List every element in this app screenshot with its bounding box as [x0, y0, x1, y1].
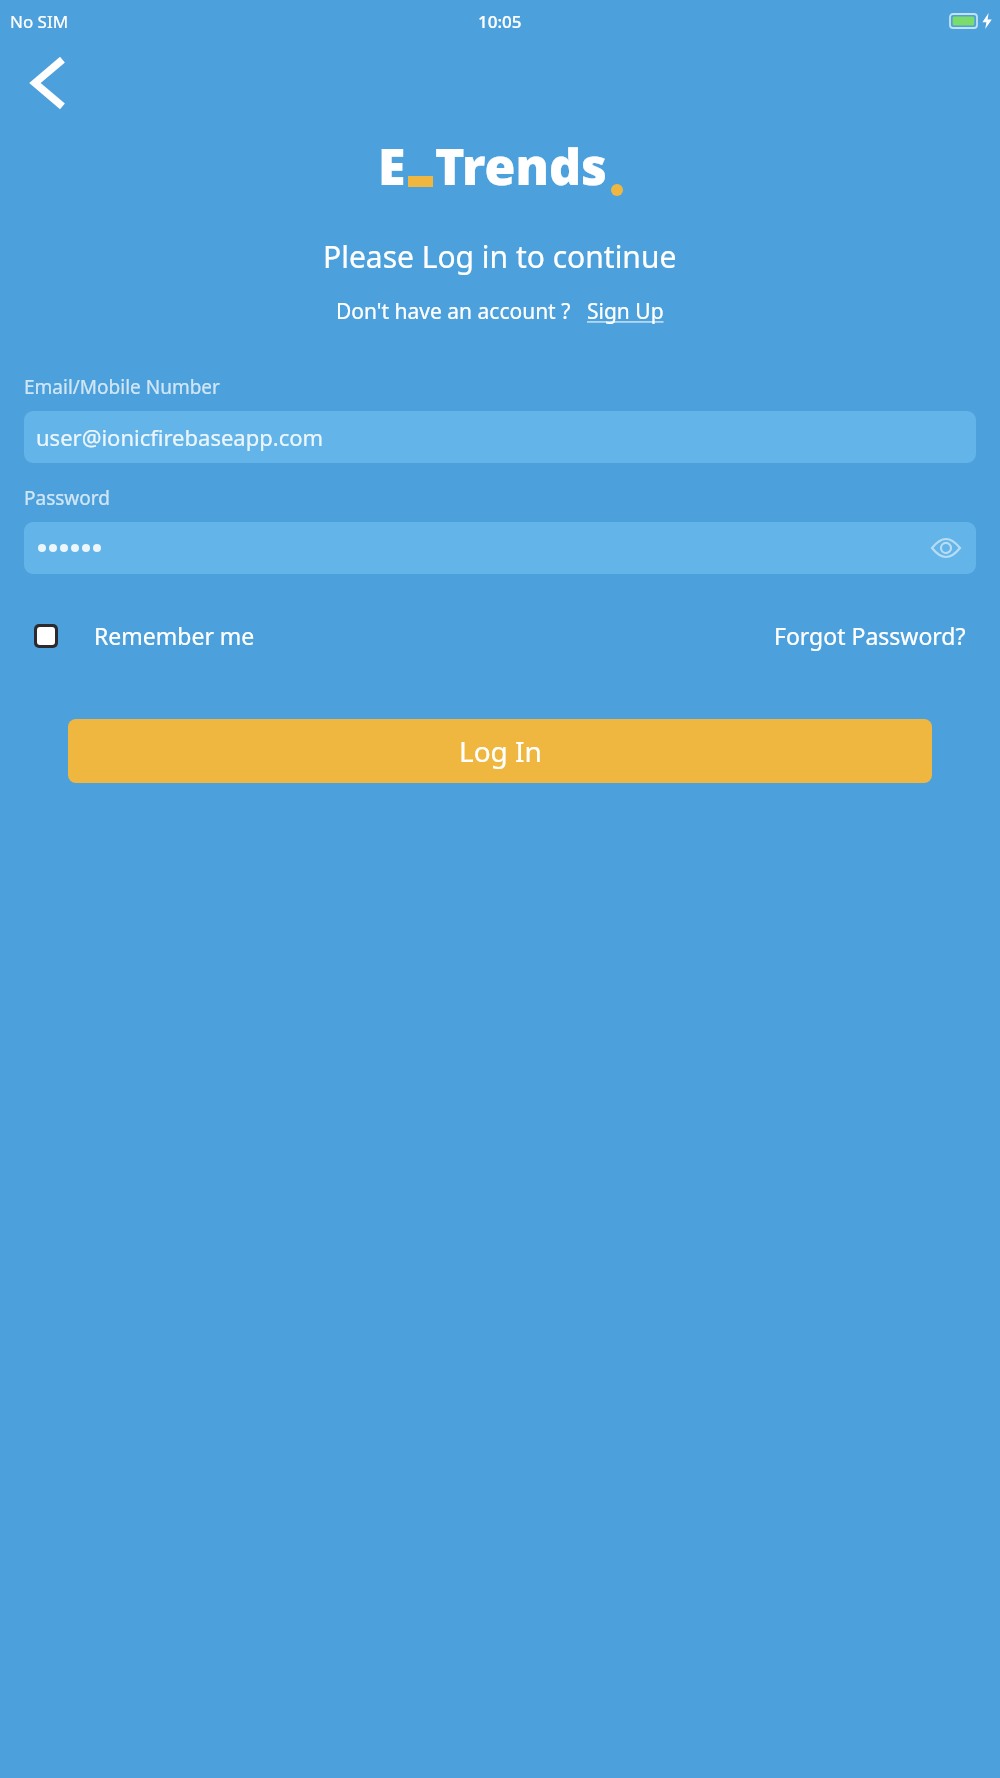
button[interactable]: Show password: [24, 522, 976, 574]
button[interactable]: Remember me: [34, 620, 255, 651]
button[interactable]: Log In: [68, 719, 932, 783]
button[interactable]: user@ionicfirebaseapp.com: [24, 411, 976, 463]
staticText: 10:05: [478, 10, 522, 33]
staticText: Trends: [435, 132, 607, 200]
staticText: Remember me: [94, 620, 255, 651]
staticText: user@ionicfirebaseapp.com: [36, 422, 324, 452]
staticText: Email/Mobile Number: [24, 374, 220, 400]
button[interactable]: Show password: [928, 530, 964, 566]
staticText: Please Log in to continue: [323, 236, 677, 277]
staticText: Log In: [459, 732, 542, 770]
staticText: Password: [24, 485, 110, 511]
staticText: No SIM: [10, 10, 69, 33]
button[interactable]: Sign Up: [587, 297, 664, 326]
button[interactable]: Forgot Password?: [774, 620, 966, 651]
staticText: Don't have an account ?: [336, 297, 571, 326]
staticText: E: [378, 132, 406, 200]
button[interactable]: Back: [16, 52, 78, 114]
staticText: Forgot Password?: [774, 620, 966, 651]
staticText: Sign Up: [587, 297, 664, 326]
